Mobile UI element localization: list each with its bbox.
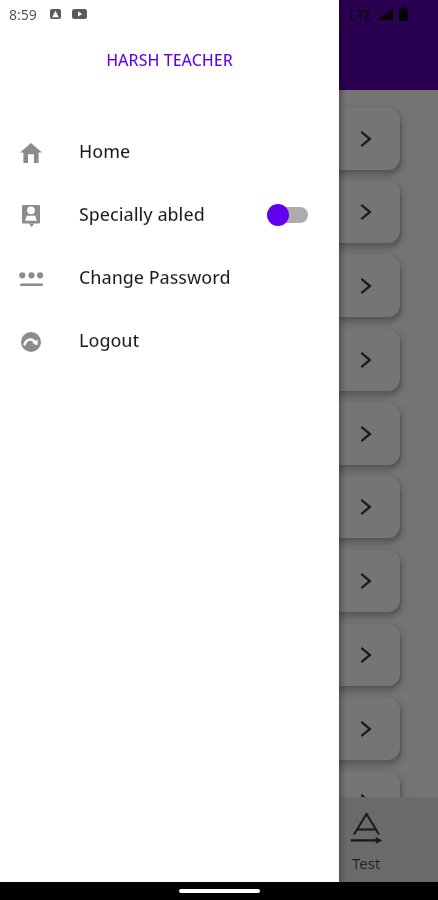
button[interactable]: Open item — [14, 329, 400, 391]
staticText: Change Password — [79, 265, 231, 289]
button[interactable]: Open item — [14, 624, 400, 686]
button[interactable]: Class — [234, 799, 322, 884]
staticText: 8:59 — [9, 5, 37, 24]
button[interactable]: Open item — [14, 255, 400, 317]
button[interactable]: Specially abled — [0, 182, 339, 245]
staticText: Specially abled — [79, 202, 205, 226]
button[interactable]: Specially abled toggle — [267, 203, 308, 227]
button[interactable]: Open item — [14, 108, 400, 170]
staticText: Logout — [79, 328, 140, 352]
button[interactable]: Logout — [0, 308, 339, 371]
staticText: Test — [352, 853, 381, 873]
button[interactable]: Study — [146, 799, 234, 884]
button[interactable]: Change Password — [0, 245, 339, 308]
button[interactable]: Open item — [14, 403, 400, 465]
button[interactable]: Open item — [14, 181, 400, 243]
button[interactable]: Home — [0, 119, 339, 182]
staticText: HARSH TEACHER — [0, 49, 339, 71]
button[interactable]: Open item — [14, 476, 400, 538]
button[interactable]: Open item — [14, 550, 400, 612]
button[interactable]: Open item — [14, 771, 400, 797]
button[interactable]: Open item — [14, 698, 400, 760]
button[interactable]: Home — [58, 799, 146, 884]
button[interactable]: Test — [322, 799, 410, 884]
staticText: LTE — [349, 5, 372, 24]
staticText: Home — [79, 139, 131, 163]
